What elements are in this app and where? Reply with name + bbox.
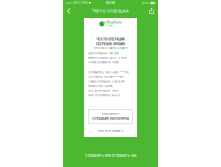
staticText: КОМИССИЯ: 0.00 РУБ [88, 85, 112, 87]
staticText: ФИО ПОЛУЧАТЕЛЯ: АННА В. [88, 94, 120, 97]
button[interactable]: Back [63, 6, 77, 16]
staticText: ПОЛУЧАТЕЛЬ: VISA КАРТА ****5678 [88, 76, 123, 78]
staticText: 100% [142, 1, 150, 5]
staticText: Операция выполнена [92, 116, 129, 121]
staticText: 08:08 [106, 1, 115, 5]
staticText: Перевод с карты на карту [93, 47, 127, 50]
staticText: www.online.sberbank.ru [98, 130, 123, 132]
staticText: НОМЕР ДОКУМЕНТА: 472448 [88, 61, 118, 64]
staticText: ЧЕК ПО ОПЕРАЦИИ [96, 38, 124, 41]
staticText: ДАТА ОПЕРАЦИИ: 28.12.2018 [88, 52, 118, 55]
button[interactable]: Share [144, 6, 158, 16]
staticText: ЧЕК ПЕРЕВОДА НА КАРТУ [101, 113, 119, 115]
staticText: ОТПРАВИТЕЛЬ: VISA CLASSIC ****1234 [88, 71, 128, 74]
staticText: МТС RUS [73, 1, 88, 5]
staticText: Сохранить или отправить чек [84, 153, 136, 158]
staticText: ВРЕМЯ ОПЕРАЦИИ (МСК): 07:44:28 [88, 57, 126, 59]
staticText: Сбербанк [106, 21, 122, 24]
staticText: СБЕРБАНК ОНЛАЙН [96, 43, 125, 46]
button[interactable]: Сохранить или отправить чек [63, 149, 158, 162]
staticText: Онлайн [106, 24, 113, 27]
staticText: КОД АВТОРИЗАЦИИ: 284519 [88, 89, 118, 92]
staticText: СУММА ОПЕРАЦИИ: 6 000.00 РУБ [88, 80, 124, 83]
staticText: Чек по операции [92, 8, 129, 14]
